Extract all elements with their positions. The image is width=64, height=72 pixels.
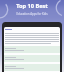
button[interactable]	[2, 22, 62, 72]
button[interactable]	[4, 46, 60, 53]
button[interactable]	[4, 55, 60, 62]
button[interactable]	[4, 64, 60, 71]
staticText: Top 10 Best	[0, 2, 64, 10]
staticText: Education Apps for Kids	[0, 12, 64, 16]
